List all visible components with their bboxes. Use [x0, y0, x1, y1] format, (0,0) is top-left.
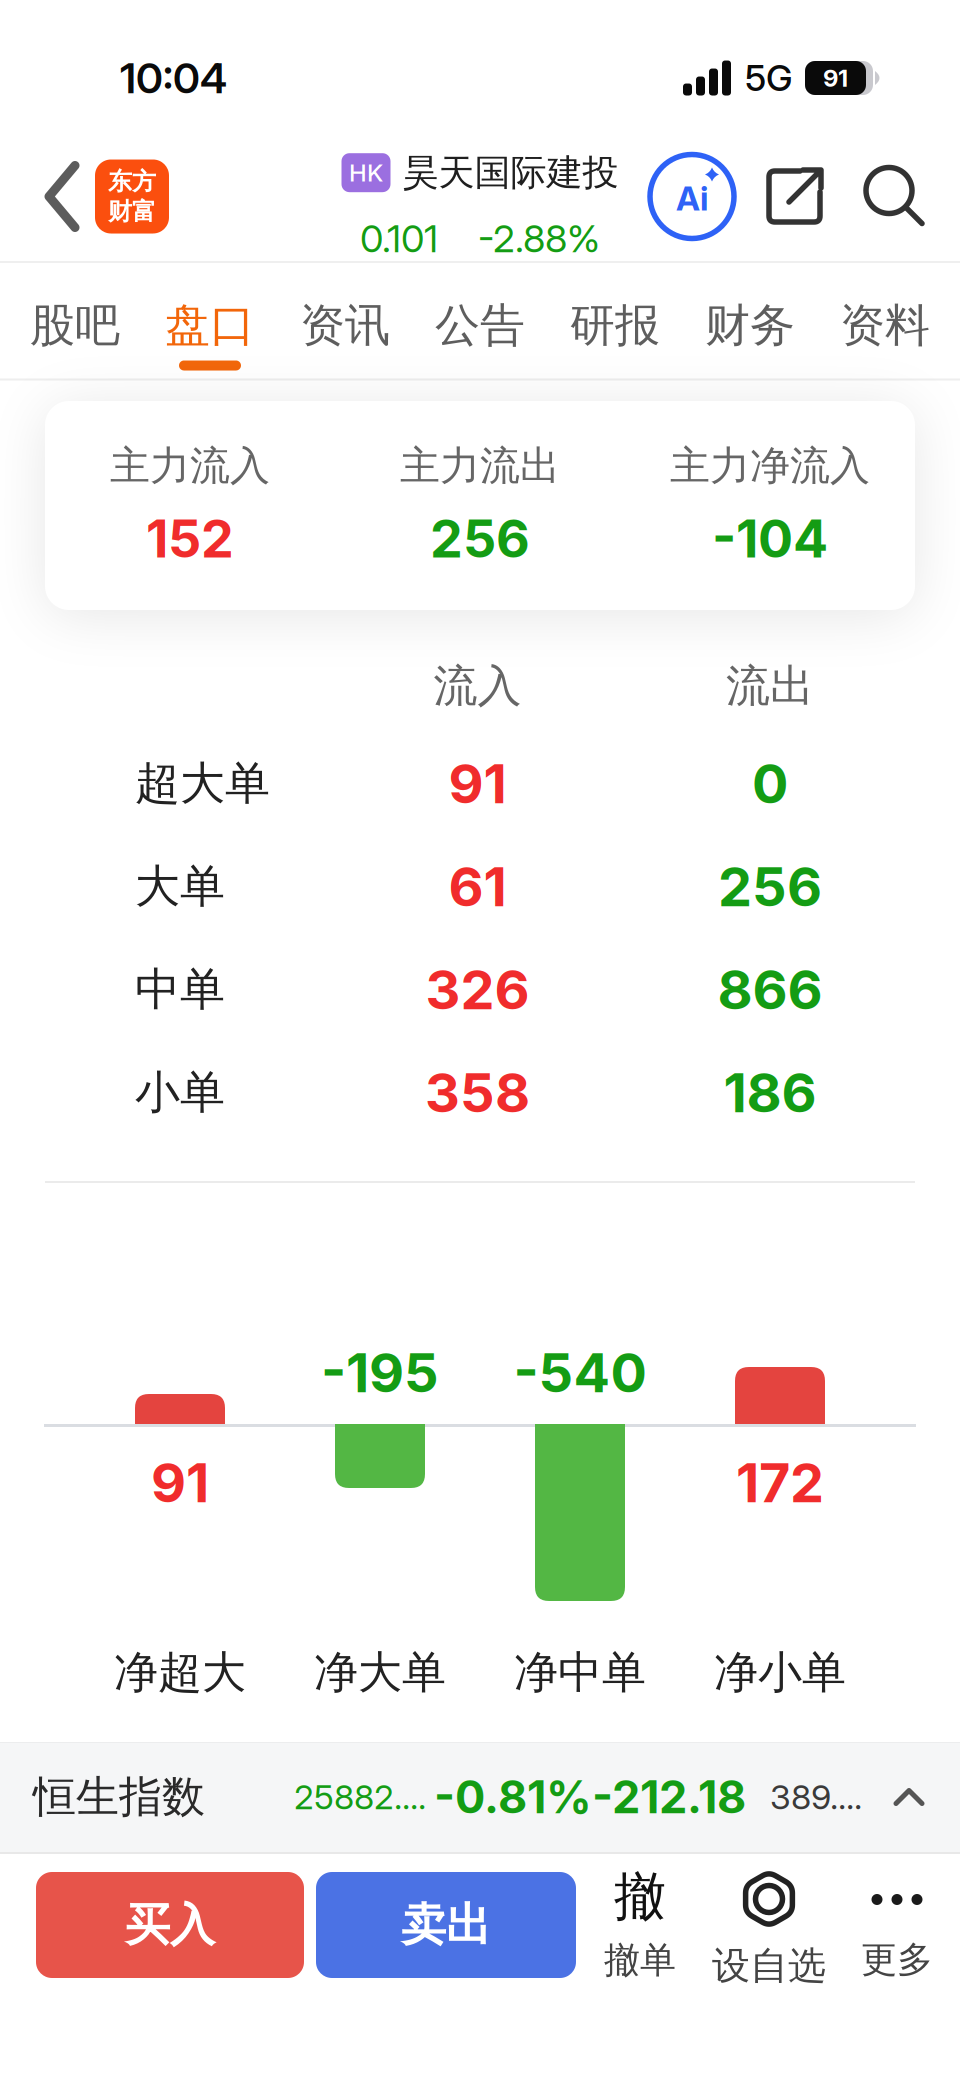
staticText: 326: [425, 957, 529, 1022]
staticText: 恒生指数: [33, 1770, 205, 1824]
button[interactable]: 更多: [834, 1852, 960, 1982]
staticText: 256: [430, 507, 530, 570]
staticText: 更多: [861, 1937, 933, 1982]
staticText: 设自选: [712, 1942, 826, 1990]
staticText: 256: [718, 854, 822, 919]
staticText: 财富: [108, 196, 156, 227]
staticText: HK: [349, 158, 383, 187]
staticText: 买入: [125, 1897, 215, 1953]
staticText: 152: [146, 507, 234, 570]
staticText: -0.81%: [434, 1770, 592, 1824]
staticText: 财务: [705, 297, 795, 354]
staticText: -195: [321, 1340, 439, 1405]
staticText: 卖出: [401, 1897, 491, 1953]
staticText: 0: [752, 751, 788, 816]
button[interactable]: 研报: [568, 297, 662, 354]
staticText: 91: [448, 751, 506, 816]
button[interactable]: 东方财富: [95, 159, 169, 233]
button[interactable]: 恒生指数: [0, 1742, 960, 1852]
staticText: 盘口: [165, 297, 255, 354]
staticText: 61: [448, 854, 506, 919]
staticText: 净小单: [714, 1645, 846, 1700]
staticText: 净大单: [314, 1645, 446, 1700]
staticText: 358: [425, 1060, 530, 1125]
button[interactable]: 卖出: [316, 1872, 576, 1978]
staticText: 大单: [135, 858, 225, 915]
staticText: 中单: [135, 961, 225, 1018]
staticText: 股吧: [30, 297, 120, 354]
staticText: Ai: [676, 178, 708, 218]
button[interactable]: 资讯: [298, 297, 392, 354]
staticText: 流入: [433, 658, 521, 714]
button[interactable]: 资料: [838, 297, 932, 354]
button[interactable]: 财务: [703, 297, 797, 354]
staticText: -212.18: [592, 1770, 746, 1824]
button[interactable]: 撤: [576, 1852, 704, 1983]
staticText: 净超大: [114, 1645, 246, 1700]
staticText: 25882....: [294, 1776, 426, 1817]
staticText: 10:04: [120, 53, 227, 103]
staticText: 866: [717, 957, 822, 1022]
button[interactable]: 股吧: [28, 297, 122, 354]
staticText: 91: [823, 63, 848, 92]
staticText: 主力净流入: [670, 441, 870, 491]
button[interactable]: 买入: [36, 1872, 304, 1978]
staticText: 主力流出: [400, 441, 560, 491]
staticText: 资料: [840, 297, 930, 354]
button[interactable]: 公告: [433, 297, 527, 354]
staticText: 流出: [726, 658, 814, 714]
staticText: 超大单: [135, 755, 270, 812]
staticText: 撤: [614, 1864, 666, 1929]
button[interactable]: Back: [0, 163, 95, 229]
staticText: 91: [151, 1450, 209, 1515]
staticText: 172: [736, 1450, 824, 1515]
staticText: 研报: [570, 297, 660, 354]
staticText: -104: [712, 507, 828, 570]
staticText: 389....: [770, 1776, 862, 1817]
staticText: 小单: [135, 1064, 225, 1121]
button[interactable]: AI: [648, 152, 736, 240]
staticText: 公告: [435, 297, 525, 354]
staticText: 186: [723, 1060, 816, 1125]
staticText: 0.101: [360, 215, 438, 261]
button[interactable]: Search: [824, 167, 960, 225]
button[interactable]: 盘口: [163, 297, 257, 354]
staticText: 净中单: [514, 1645, 646, 1700]
staticText: 主力流入: [110, 441, 270, 491]
staticText: 5G: [745, 56, 793, 100]
button[interactable]: 设自选: [704, 1852, 834, 1990]
staticText: -2.88%: [478, 215, 600, 261]
staticText: 资讯: [300, 297, 390, 354]
staticText: 撤单: [604, 1937, 676, 1983]
staticText: -540: [513, 1340, 646, 1405]
staticText: 东方: [108, 166, 156, 196]
staticText: 昊天国际建投: [402, 150, 618, 195]
button[interactable]: Share: [736, 168, 824, 225]
